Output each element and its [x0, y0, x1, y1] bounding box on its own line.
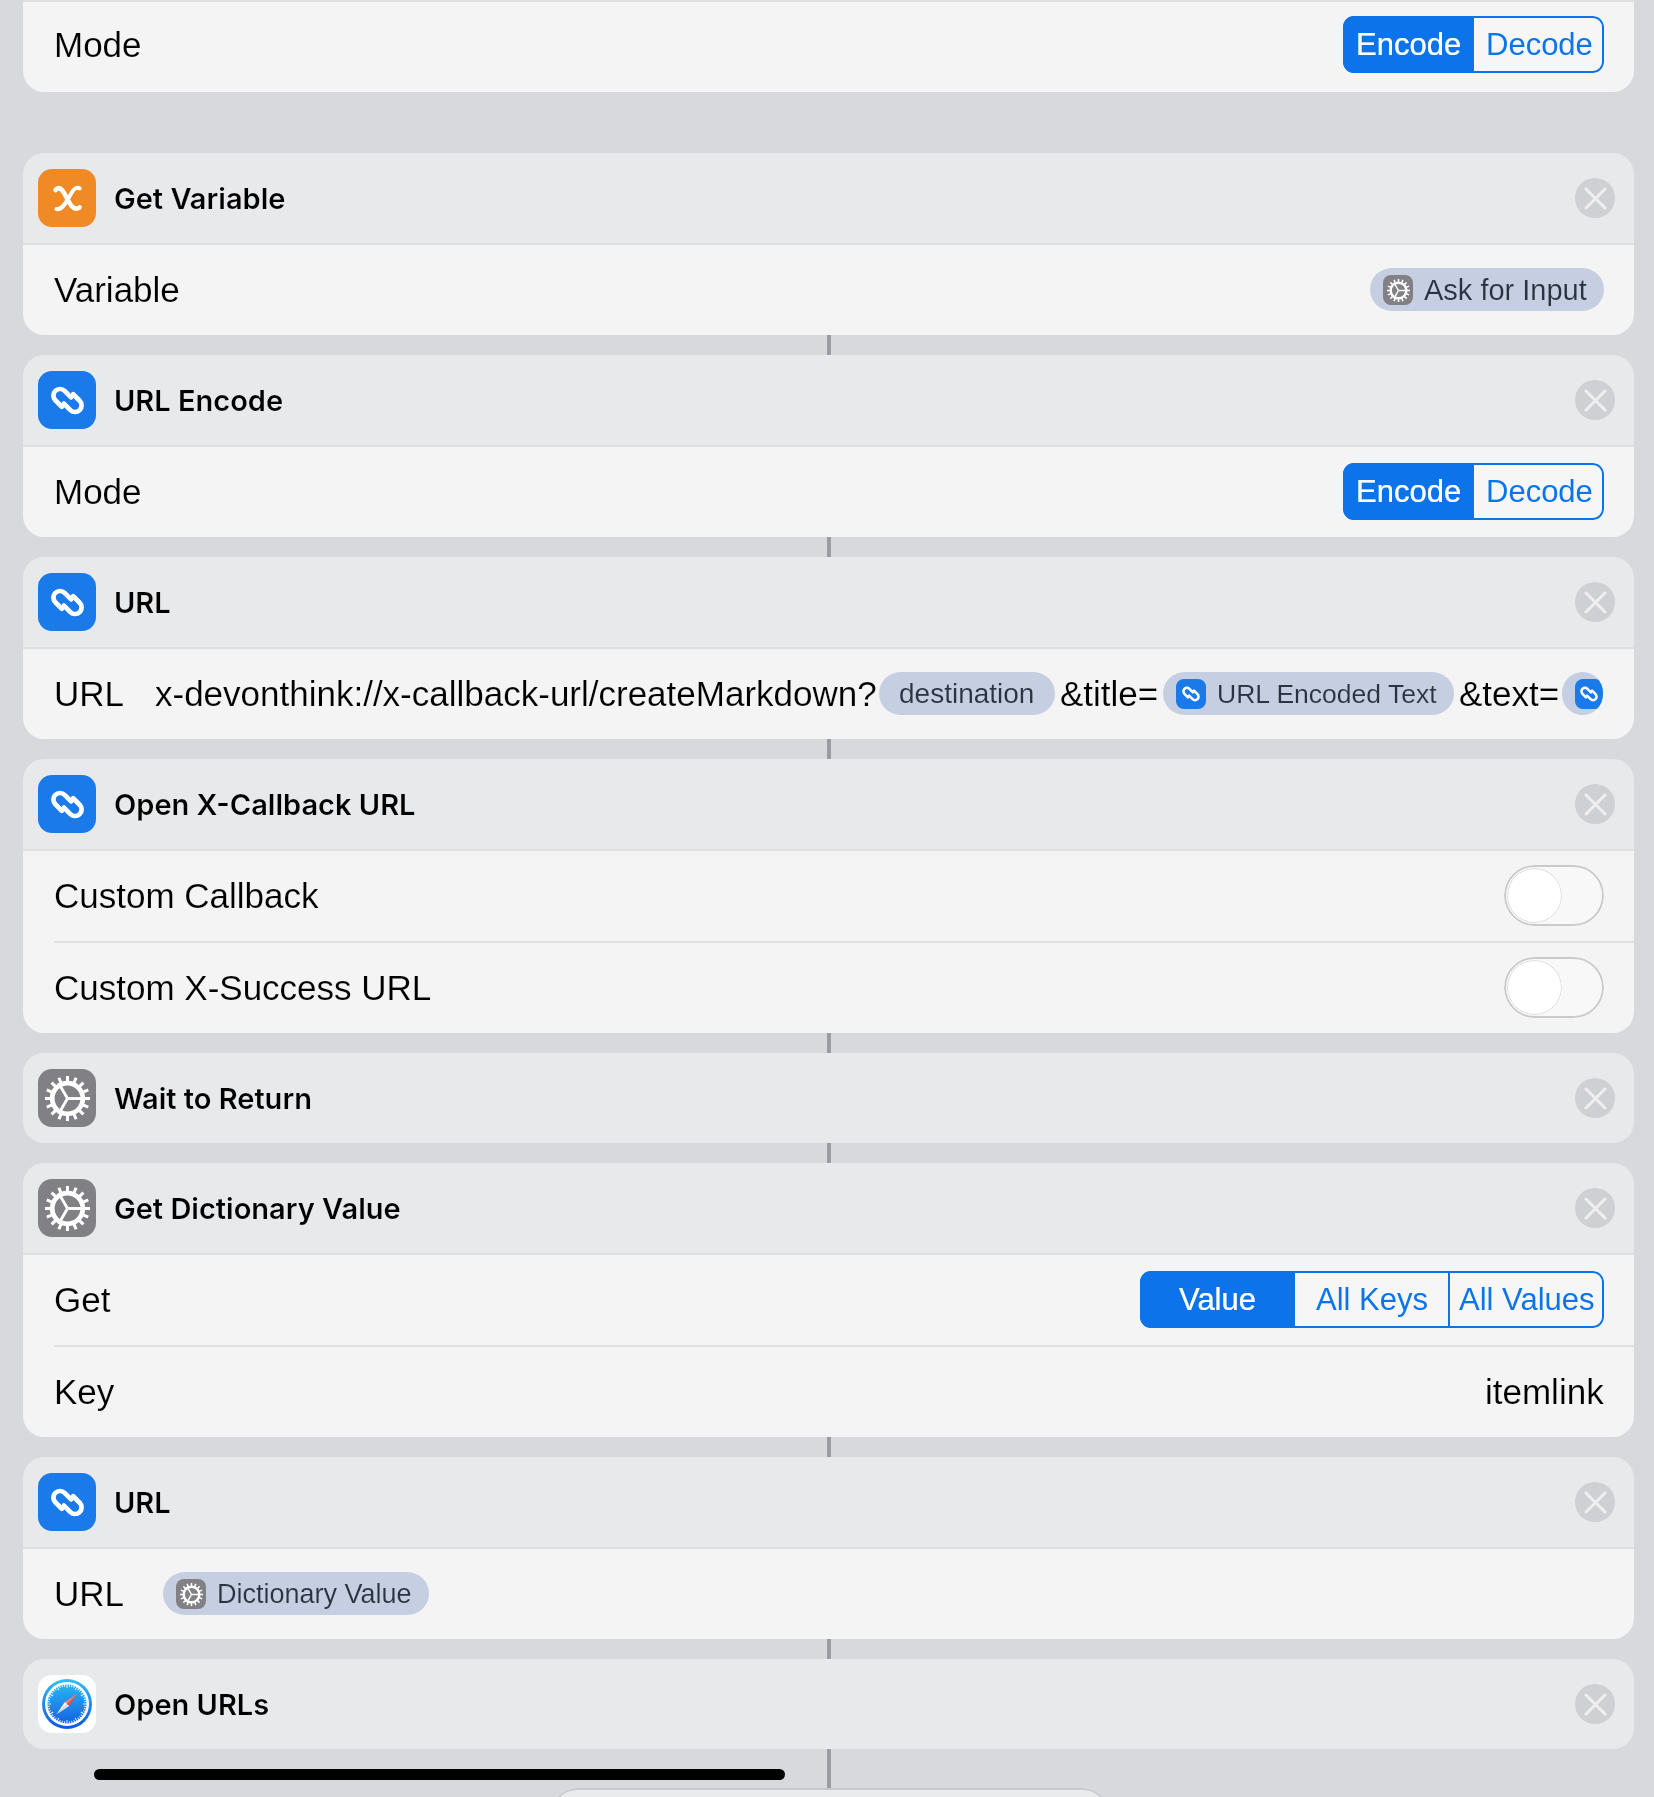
staticText: Variable: [54, 270, 180, 309]
button[interactable]: URL: [23, 1547, 1634, 1639]
button[interactable]: Remove action: [1575, 1684, 1615, 1724]
staticText: Ask for Input: [1424, 274, 1587, 306]
button[interactable]: All Values: [1450, 1271, 1604, 1328]
button[interactable]: URL Encode: [23, 355, 1634, 445]
button[interactable]: Custom X-Success URL: [23, 941, 1634, 1033]
staticText: URL: [114, 585, 171, 620]
button[interactable]: Dictionary Value: [163, 1572, 429, 1615]
button[interactable]: Mode: [23, 0, 1634, 92]
staticText: URL: [54, 1574, 125, 1613]
button[interactable]: Decode: [1474, 16, 1604, 73]
button[interactable]: URL: [23, 557, 1634, 647]
staticText: Dictionary Value: [217, 1579, 412, 1609]
staticText: All Keys: [1316, 1282, 1428, 1317]
staticText: Encode: [1356, 27, 1462, 62]
staticText: Custom Callback: [54, 876, 319, 915]
button[interactable]: Variable: [23, 243, 1634, 335]
staticText: destination: [899, 678, 1035, 709]
button[interactable]: Toggle: [1504, 957, 1604, 1018]
button[interactable]: Remove action: [1575, 1188, 1615, 1228]
button[interactable]: Get Dictionary Value: [23, 1163, 1634, 1253]
button[interactable]: Wait to Return: [23, 1053, 1634, 1143]
button[interactable]: Remove action: [1575, 582, 1615, 622]
button[interactable]: Remove action: [1575, 784, 1615, 824]
staticText: Decode: [1486, 474, 1593, 509]
staticText: &text=: [1459, 674, 1560, 713]
button[interactable]: Remove action: [1575, 178, 1615, 218]
button[interactable]: Encode: [1343, 463, 1474, 520]
staticText: &title=: [1060, 674, 1159, 713]
button[interactable]: Decode: [1474, 463, 1604, 520]
staticText: Get Dictionary Value: [114, 1191, 401, 1226]
staticText: Decode: [1486, 27, 1593, 62]
button[interactable]: URL Encoded Text: [1163, 672, 1454, 715]
staticText: itemlink: [1485, 1372, 1604, 1411]
button[interactable]: Ask for Input: [1370, 268, 1604, 311]
staticText: x-devonthink://x-callback-url/createMark…: [155, 674, 877, 713]
button[interactable]: Mode: [23, 445, 1634, 537]
staticText: URL: [114, 1485, 171, 1520]
button[interactable]: Get Variable: [23, 153, 1634, 243]
button[interactable]: URL: [23, 647, 1634, 739]
button[interactable]: Remove action: [1575, 380, 1615, 420]
staticText: URL Encoded Text: [1217, 679, 1437, 709]
button[interactable]: All Keys: [1295, 1271, 1448, 1328]
staticText: Get: [54, 1280, 111, 1319]
button[interactable]: Value: [1140, 1271, 1295, 1328]
button[interactable]: Custom Callback: [23, 849, 1634, 941]
button[interactable]: Encode: [1343, 16, 1474, 73]
staticText: Mode: [54, 25, 142, 64]
button[interactable]: URL: [23, 1457, 1634, 1547]
staticText: Value: [1179, 1282, 1256, 1317]
button[interactable]: Toggle: [1504, 865, 1604, 926]
button[interactable]: [1562, 672, 1603, 715]
staticText: URL Encode: [114, 383, 284, 418]
staticText: Open URLs: [114, 1687, 270, 1722]
button[interactable]: Remove action: [1575, 1078, 1615, 1118]
button[interactable]: Remove action: [1575, 1482, 1615, 1522]
staticText: Wait to Return: [114, 1081, 312, 1116]
staticText: Mode: [54, 472, 142, 511]
button[interactable]: Key: [23, 1345, 1634, 1437]
button[interactable]: destination: [879, 672, 1055, 715]
staticText: Encode: [1356, 474, 1462, 509]
staticText: Key: [54, 1372, 115, 1411]
button[interactable]: Get: [23, 1253, 1634, 1345]
staticText: Open X-Callback URL: [114, 787, 416, 822]
staticText: Custom X-Success URL: [54, 968, 432, 1007]
button[interactable]: Open X-Callback URL: [23, 759, 1634, 849]
staticText: All Values: [1459, 1282, 1595, 1317]
staticText: URL: [54, 674, 125, 713]
staticText: Get Variable: [114, 181, 286, 216]
button[interactable]: Open URLs: [23, 1659, 1634, 1749]
